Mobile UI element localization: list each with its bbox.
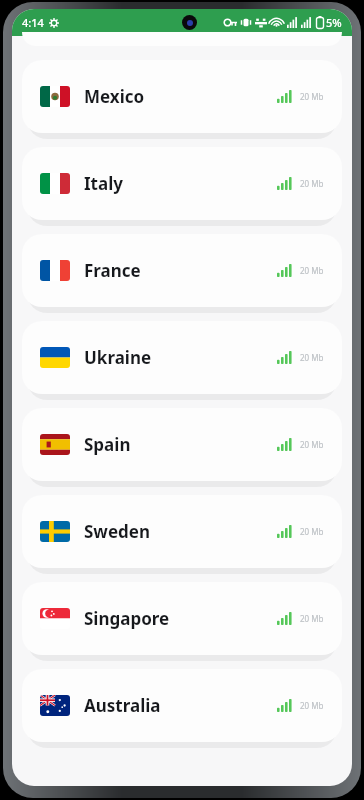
staticText: Singapore (84, 607, 170, 630)
staticText: 20 Mb (300, 352, 324, 363)
staticText: 20 Mb (300, 700, 324, 711)
staticText: 5% (326, 15, 342, 30)
staticText: 20 Mb (300, 265, 324, 276)
staticText: 20 Mb (300, 439, 324, 450)
staticText: Spain (84, 433, 131, 456)
staticText: 4:14 (22, 15, 44, 30)
button[interactable]: Sweden (22, 495, 342, 568)
staticText: Sweden (84, 520, 151, 543)
button[interactable]: Singapore (22, 582, 342, 655)
staticText: France (84, 259, 141, 282)
staticText: Ukraine (84, 346, 152, 369)
staticText: Mexico (84, 85, 145, 108)
staticText: 20 Mb (300, 178, 324, 189)
staticText: 20 Mb (300, 613, 324, 624)
button[interactable]: Spain (22, 408, 342, 481)
button[interactable]: Ukraine (22, 321, 342, 394)
button[interactable]: Australia (22, 669, 342, 742)
button[interactable]: France (22, 234, 342, 307)
button[interactable]: Mexico (22, 60, 342, 133)
staticText: 20 Mb (300, 526, 324, 537)
button[interactable]: Italy (22, 147, 342, 220)
staticText: Italy (84, 172, 123, 195)
staticText: Australia (84, 694, 161, 717)
staticText: 20 Mb (300, 91, 324, 102)
